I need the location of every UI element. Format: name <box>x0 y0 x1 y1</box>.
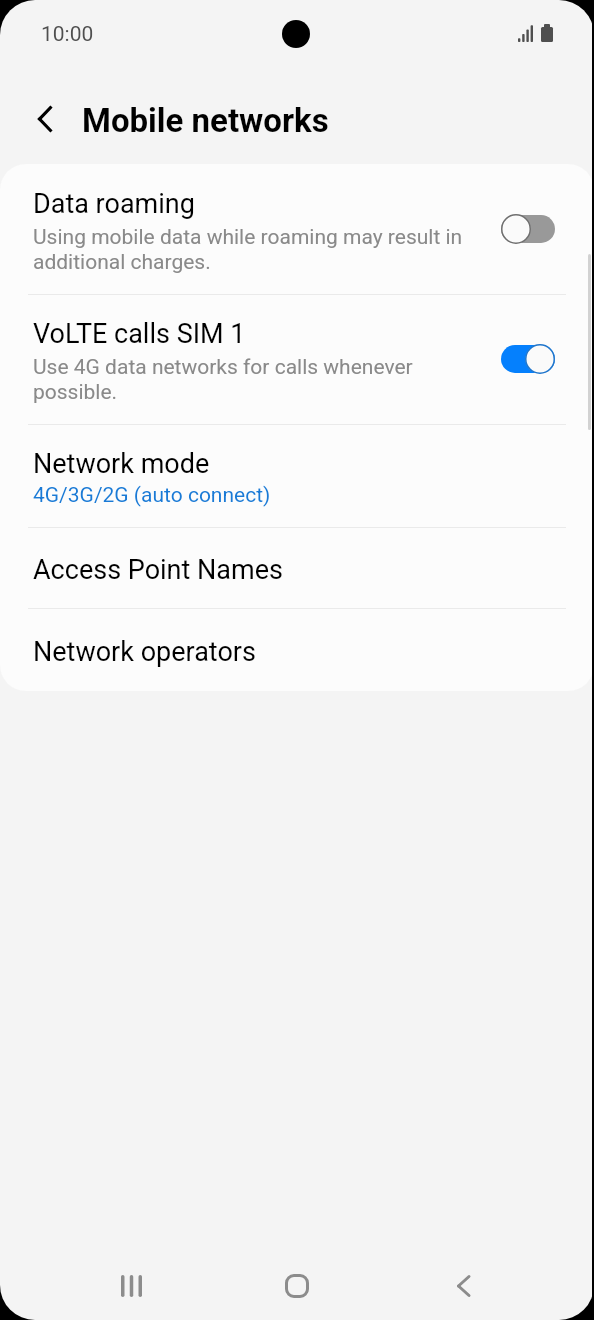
staticText: Network operators <box>33 636 256 668</box>
staticText: Use 4G data networks for calls whenever … <box>33 354 413 404</box>
staticText: Data roaming <box>33 188 195 220</box>
staticText: Access Point Names <box>33 554 283 586</box>
staticText: Using mobile data while roaming may resu… <box>33 224 463 274</box>
button[interactable]: VoLTE calls SIM 1 <box>0 294 594 424</box>
button[interactable]: Data roaming <box>0 164 594 294</box>
staticText: Network mode <box>33 448 210 480</box>
button[interactable]: Recent apps <box>95 1252 167 1320</box>
button[interactable]: Home <box>261 1252 333 1320</box>
button[interactable]: Access Point Names <box>0 527 594 608</box>
button[interactable]: Off <box>501 214 555 244</box>
staticText: Mobile networks <box>82 101 329 140</box>
button[interactable]: Network operators <box>0 608 594 691</box>
button[interactable]: Back <box>427 1252 499 1320</box>
staticText: 4G/3G/2G (auto connect) <box>33 483 271 508</box>
button[interactable]: Navigate up <box>19 93 71 145</box>
staticText: 10:00 <box>41 22 94 47</box>
button[interactable]: On <box>501 344 555 374</box>
staticText: VoLTE calls SIM 1 <box>33 318 246 350</box>
button[interactable]: Network mode <box>0 424 594 527</box>
